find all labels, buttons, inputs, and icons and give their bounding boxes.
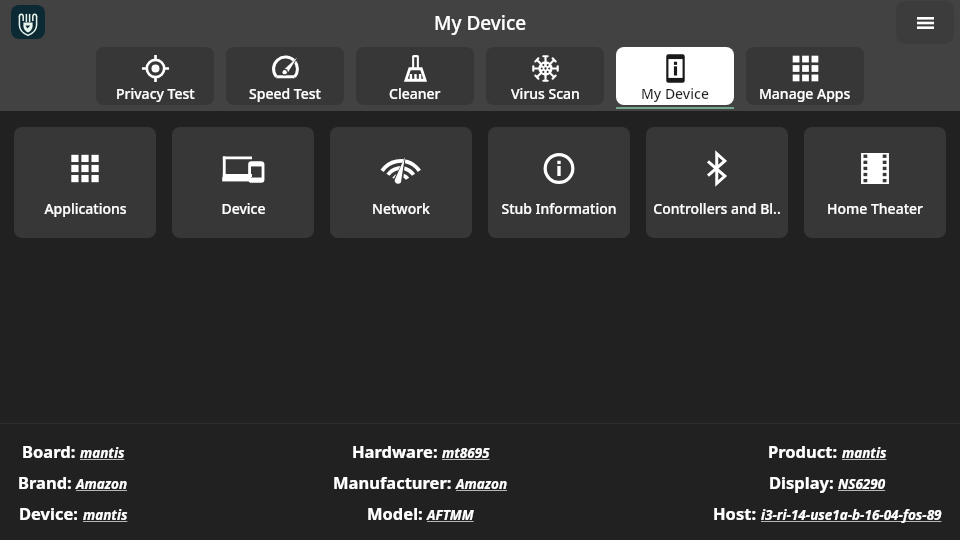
button[interactable]: Virus Scan (486, 47, 604, 105)
staticText: Model: (367, 502, 427, 524)
button[interactable]: Display: (769, 471, 886, 493)
button[interactable]: Device: (19, 502, 128, 524)
staticText: My Device (641, 84, 709, 103)
staticText: Brand: (18, 471, 76, 493)
button[interactable]: Home Theater (804, 127, 946, 238)
staticText: i3-ri-14-use1a-b-16-04-fos-89 (761, 506, 942, 524)
button[interactable]: Host: (713, 502, 942, 524)
staticText: Manage Apps (759, 84, 851, 103)
button[interactable]: App logo (11, 5, 45, 39)
staticText: Board: (22, 440, 80, 462)
staticText: Privacy Test (116, 84, 195, 103)
staticText: Applications (44, 199, 127, 218)
button[interactable]: Network (330, 127, 472, 238)
button[interactable]: My Device (616, 47, 734, 105)
staticText: Amazon (76, 475, 128, 493)
button[interactable]: Model: (367, 502, 474, 524)
button[interactable]: Board: (22, 440, 125, 462)
button[interactable]: Speed Test (226, 47, 344, 105)
staticText: mantis (842, 444, 887, 462)
staticText: Controllers and Bl.. (653, 199, 781, 218)
staticText: Amazon (456, 475, 508, 493)
button[interactable]: Device (172, 127, 314, 238)
staticText: Product: (768, 440, 842, 462)
staticText: Device (221, 199, 266, 218)
staticText: Host: (713, 502, 761, 524)
staticText: Hardware: (352, 440, 442, 462)
staticText: Home Theater (827, 199, 923, 218)
staticText: mantis (80, 444, 125, 462)
button[interactable]: Manage Apps (746, 47, 864, 105)
button[interactable]: Product: (768, 440, 887, 462)
staticText: AFTMM (427, 506, 474, 524)
staticText: mantis (83, 506, 128, 524)
button[interactable]: Controllers and Bl.. (646, 127, 788, 238)
button[interactable]: Applications (14, 127, 156, 238)
staticText: Speed Test (249, 84, 321, 103)
staticText: My Device (434, 10, 527, 36)
staticText: Network (372, 199, 430, 218)
staticText: mt8695 (442, 444, 490, 462)
button[interactable]: Manufacturer: (333, 471, 508, 493)
staticText: Stub Information (501, 199, 617, 218)
button[interactable]: Brand: (18, 471, 128, 493)
button[interactable]: Cleaner (356, 47, 474, 105)
button[interactable]: Hardware: (352, 440, 490, 462)
staticText: Device: (19, 502, 83, 524)
staticText: Manufacturer: (333, 471, 456, 493)
button[interactable]: Stub Information (488, 127, 630, 238)
button[interactable]: Privacy Test (96, 47, 214, 105)
staticText: Cleaner (389, 84, 441, 103)
staticText: Virus Scan (511, 84, 580, 103)
staticText: Display: (769, 471, 838, 493)
button[interactable]: Menu (896, 1, 954, 44)
staticText: NS6290 (838, 475, 886, 493)
